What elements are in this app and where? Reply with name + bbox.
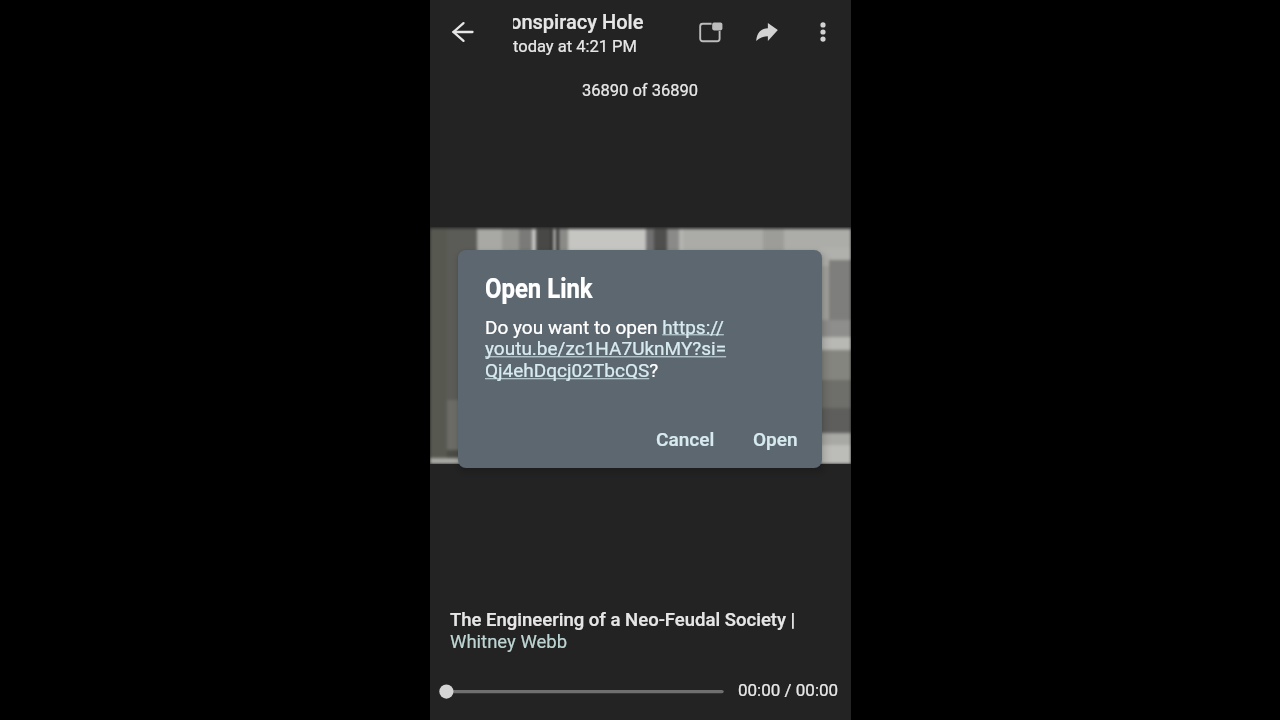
staticText: Open (753, 428, 798, 450)
button[interactable]: Back (439, 8, 487, 56)
button[interactable]: Cancel (644, 419, 727, 459)
staticText: Do you want to open https:// youtu.be/zc… (485, 316, 745, 382)
staticText: today at 4:21 PM (513, 37, 637, 56)
staticText: onspiracy Hole (513, 10, 644, 33)
staticText: Cancel (656, 428, 715, 450)
button[interactable]: Open (741, 419, 810, 459)
button[interactable]: Share (743, 8, 791, 56)
staticText: 00:00 / 00:00 (738, 680, 839, 700)
staticText: 36890 of 36890 (582, 81, 699, 100)
staticText: The Engineering of a Neo-Feudal Society … (450, 609, 825, 653)
button[interactable]: More options (799, 8, 847, 56)
staticText: Open Link (485, 273, 593, 305)
button[interactable]: Picture in picture (687, 8, 735, 56)
